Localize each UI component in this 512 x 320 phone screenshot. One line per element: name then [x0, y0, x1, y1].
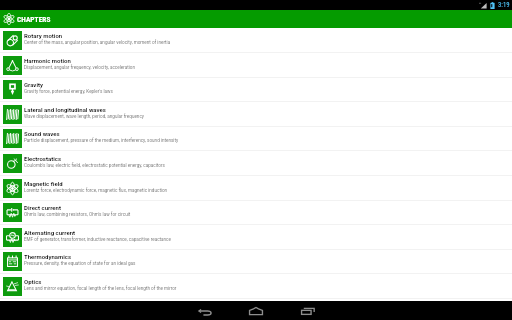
- staticText: Thermodynamics: [24, 253, 72, 260]
- staticText: Center of the mass, angular position, an…: [24, 40, 171, 45]
- button[interactable]: Optics: [0, 274, 512, 299]
- staticText: Lateral and longitudinal waves: [24, 106, 106, 113]
- staticText: Electrostatics: [24, 155, 62, 162]
- button[interactable]: Harmonic motion: [0, 53, 512, 78]
- staticText: Coulomb's law, electric field, electrost…: [24, 163, 165, 168]
- button[interactable]: Recent apps: [287, 301, 329, 320]
- staticText: CHAPTERS: [17, 15, 51, 24]
- button[interactable]: Sound waves: [0, 126, 512, 151]
- staticText: Pressure, density, the equation of state…: [24, 261, 136, 266]
- button[interactable]: Rotary motion: [0, 28, 512, 53]
- button[interactable]: Atomic physics: [0, 299, 512, 320]
- staticText: Optics: [24, 278, 42, 285]
- staticText: Sound waves: [24, 130, 60, 137]
- staticText: Particle displacement, pressure of the m…: [24, 138, 179, 143]
- staticText: Magnetic field: [24, 180, 63, 187]
- button[interactable]: Thermodynamics: [0, 249, 512, 274]
- staticText: Direct current: [24, 204, 61, 211]
- staticText: Alternating current: [24, 229, 76, 236]
- button[interactable]: Magnetic field: [0, 176, 512, 201]
- staticText: Wave displacement, wave length, period, …: [24, 114, 144, 119]
- staticText: Gravity force, potential energy, Kepler'…: [24, 89, 113, 94]
- staticText: 3:19: [498, 1, 510, 9]
- staticText: Lens and mirror equation, focal length o…: [24, 286, 177, 291]
- staticText: EMF of generator, transformer, inductive…: [24, 237, 171, 242]
- button[interactable]: Electrostatics: [0, 151, 512, 176]
- button[interactable]: Direct current: [0, 200, 512, 225]
- staticText: Rotary motion: [24, 32, 63, 39]
- staticText: Gravity: [24, 81, 44, 88]
- staticText: Lorentz force, electrodynamic force, mag…: [24, 188, 168, 193]
- button[interactable]: Lateral and longitudinal waves: [0, 102, 512, 127]
- button[interactable]: Back: [184, 301, 226, 320]
- button[interactable]: Gravity: [0, 77, 512, 102]
- button[interactable]: Alternating current: [0, 225, 512, 250]
- other: Physics app: [3, 13, 15, 25]
- staticText: Harmonic motion: [24, 57, 71, 64]
- button[interactable]: Home: [235, 301, 277, 320]
- staticText: Displacement, angular frequency, velocit…: [24, 65, 135, 70]
- staticText: Ohm's law, combining resistors, Ohm's la…: [24, 212, 131, 217]
